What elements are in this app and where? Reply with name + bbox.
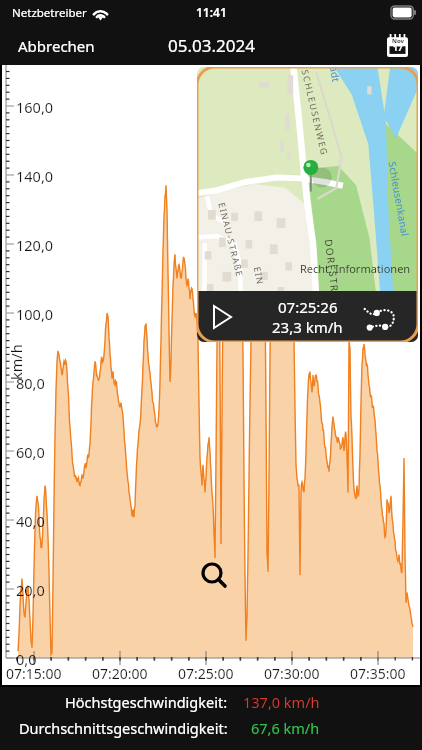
button[interactable]: Zoom — [201, 562, 226, 587]
staticText: Netzbetreiber — [12, 5, 87, 21]
staticText: 160,0 — [16, 97, 54, 117]
staticText: Nov — [392, 37, 404, 45]
staticText: 07:25:00 — [178, 664, 234, 683]
staticText: Höchstgeschwindigkeit: — [65, 692, 228, 712]
staticText: adt — [327, 67, 343, 83]
staticText: km/h — [6, 344, 26, 380]
staticText: 140,0 — [16, 166, 54, 186]
staticText: 23,3 km/h — [272, 317, 343, 337]
staticText: 40,0 — [16, 511, 45, 531]
staticText: 07:25:26 — [278, 297, 338, 317]
staticText: 20,0 — [16, 580, 45, 600]
staticText: SCHLEUSENWEG — [300, 68, 331, 158]
staticText: 17 — [393, 42, 403, 54]
button[interactable]: Kalender — [387, 34, 408, 57]
staticText: Durchschnittsgeschwindigkeit: — [19, 718, 228, 738]
staticText: 0,0 — [16, 649, 37, 669]
staticText: 11:41 — [196, 4, 227, 20]
staticText: 137,0 km/h — [243, 692, 320, 712]
staticText: 67,6 km/h — [251, 718, 320, 738]
staticText: Schleusenkanal — [385, 160, 412, 238]
staticText: 120,0 — [16, 235, 54, 255]
button[interactable]: Abbrechen — [0, 30, 103, 62]
staticText: 05.03.2024 — [168, 34, 255, 57]
staticText: 07:15:00 — [6, 664, 62, 683]
staticText: EIN — [252, 265, 267, 286]
staticText: DORFSTR — [322, 238, 342, 294]
button[interactable]: Route — [364, 306, 396, 330]
staticText: Recht. Informationen — [300, 261, 411, 276]
staticText: 60,0 — [16, 442, 45, 462]
staticText: 07:20:00 — [92, 664, 148, 683]
staticText: EINAU-STRAßE — [216, 201, 247, 279]
button[interactable]: SCHLEUSENWEG — [197, 67, 418, 342]
staticText: 100,0 — [16, 304, 54, 324]
staticText: 80,0 — [16, 373, 45, 393]
staticText: 07:35:00 — [350, 664, 406, 683]
button[interactable]: Abspielen — [213, 305, 232, 329]
staticText: 07:30:00 — [264, 664, 320, 683]
